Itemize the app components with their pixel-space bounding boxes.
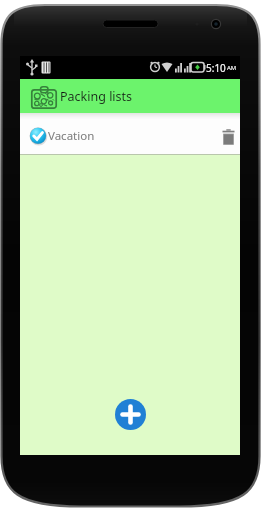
- button[interactable]: [217, 118, 240, 154]
- button[interactable]: Vacation: [20, 113, 240, 154]
- staticText: AM: [227, 64, 237, 72]
- staticText: Vacation: [48, 128, 95, 144]
- button[interactable]: [29, 127, 47, 145]
- staticText: Packing lists: [60, 88, 133, 105]
- staticText: 5:10: [206, 61, 226, 75]
- button[interactable]: [115, 399, 146, 430]
